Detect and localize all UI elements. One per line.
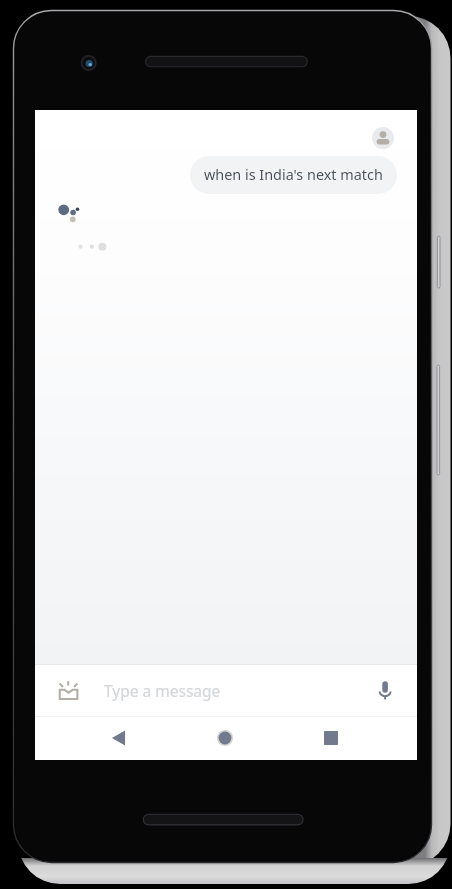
staticText: Type a message [104, 680, 221, 701]
button[interactable]: Recent apps [311, 718, 351, 758]
staticText: when is India's next match [204, 165, 383, 185]
button[interactable]: Home [205, 718, 245, 758]
button[interactable]: Voice input [364, 669, 406, 711]
button[interactable]: Back [99, 718, 139, 758]
button[interactable]: when is India's next match [190, 156, 397, 194]
button[interactable]: Explore [44, 669, 86, 711]
